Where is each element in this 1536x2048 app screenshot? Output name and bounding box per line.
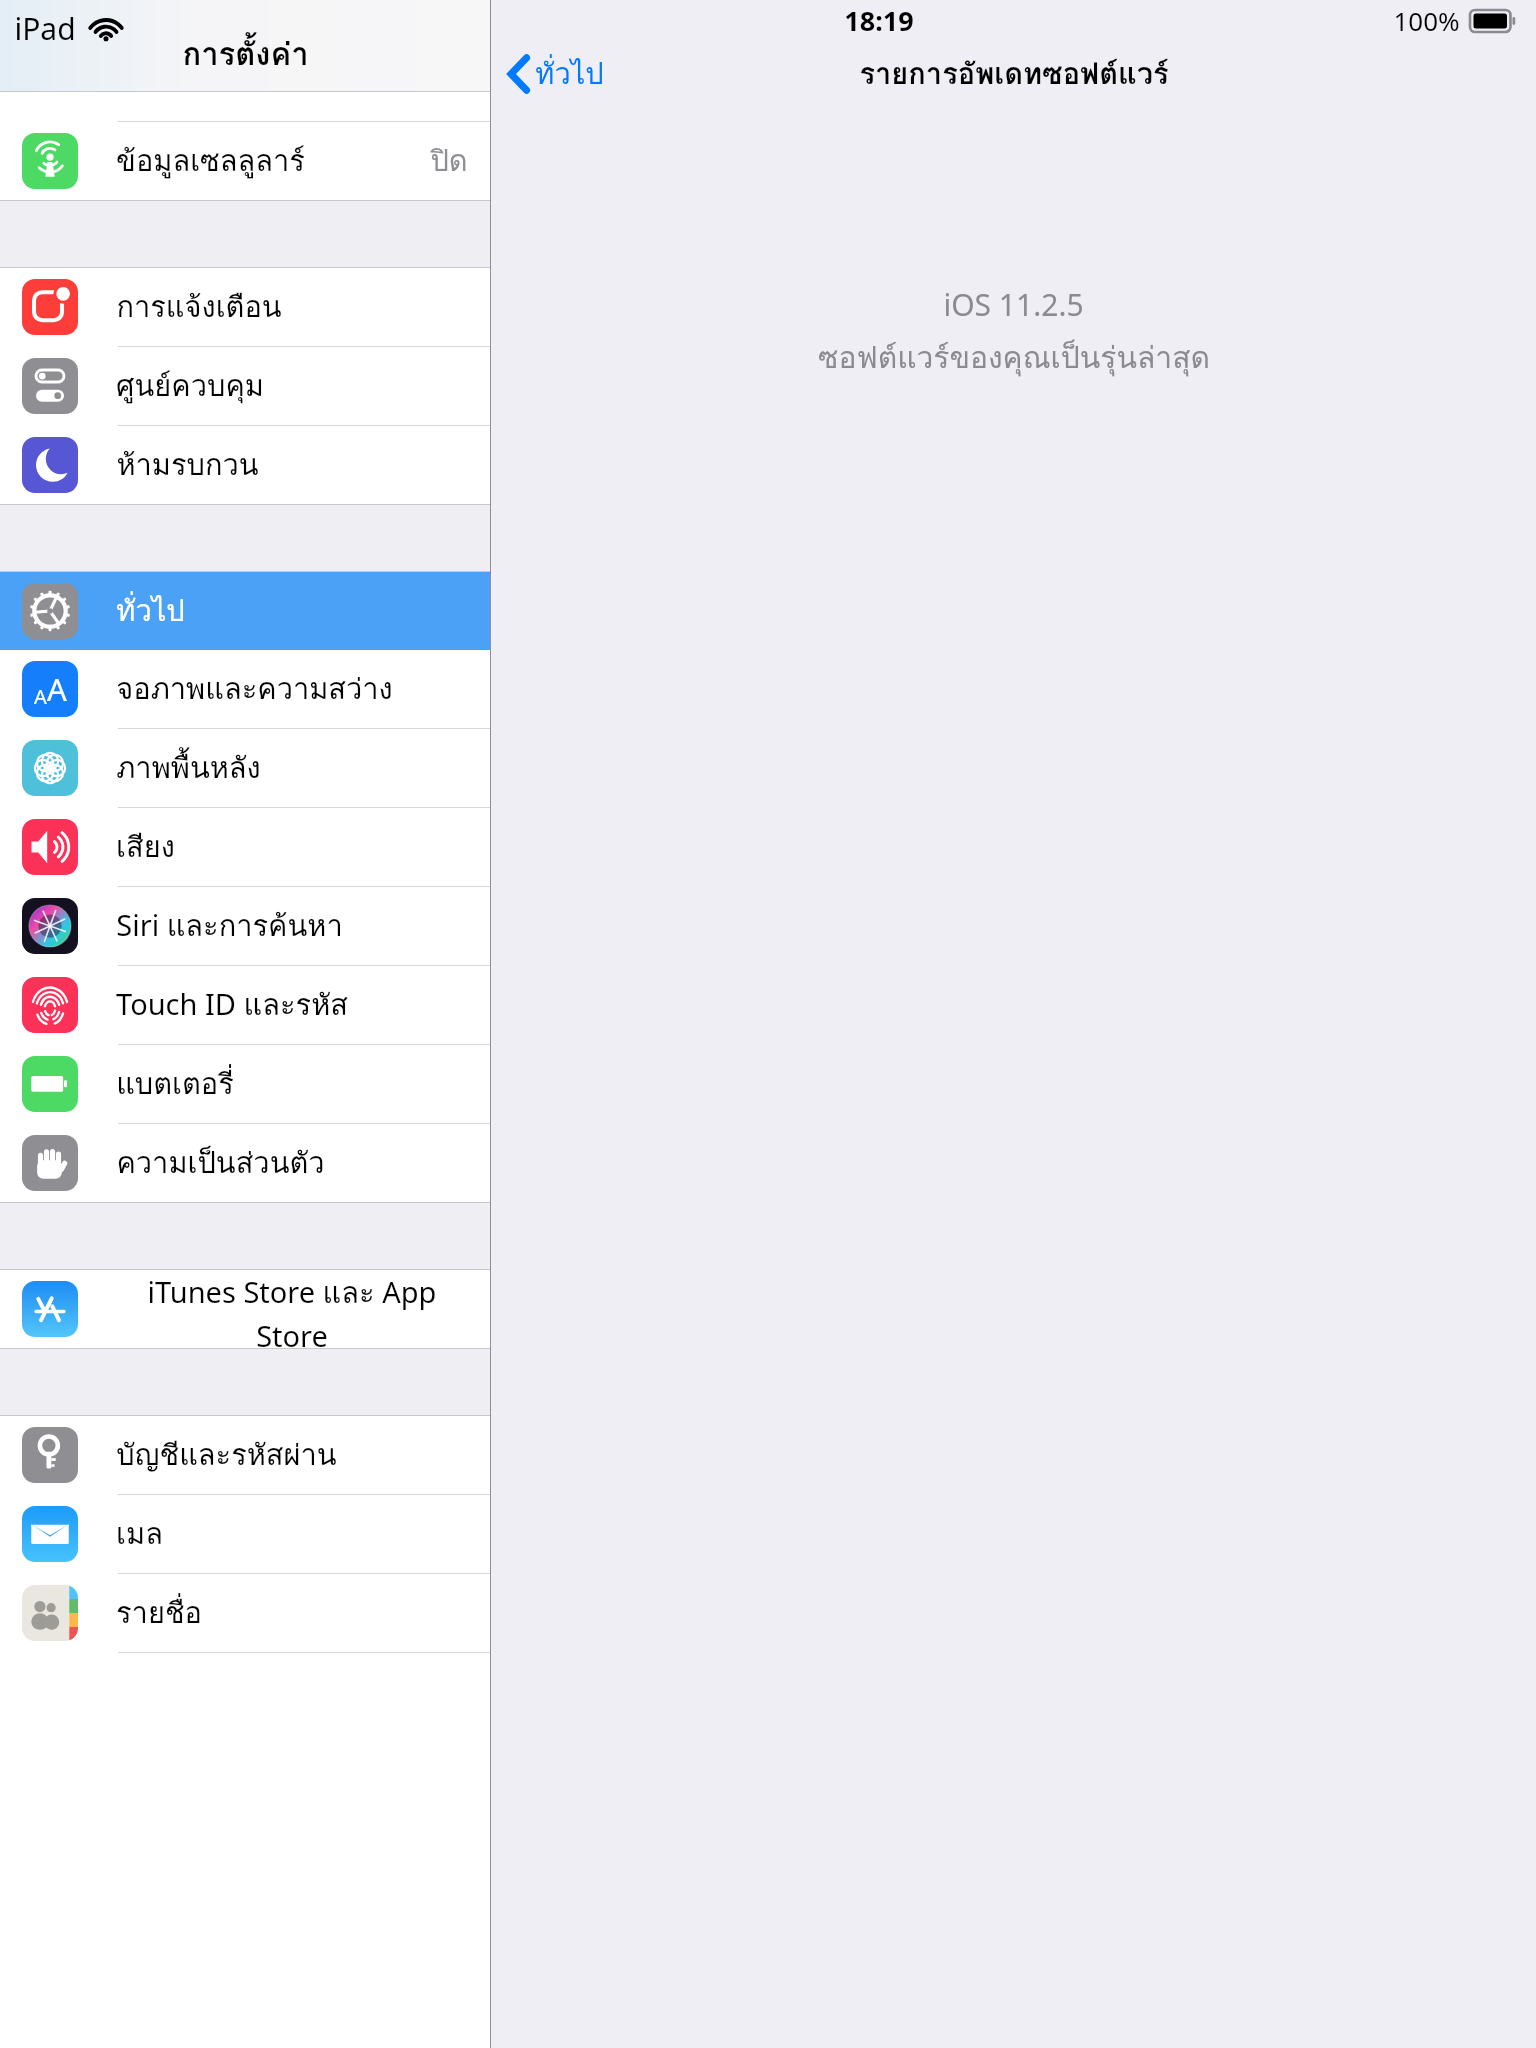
button[interactable]: Cellular Data xyxy=(0,122,490,200)
staticText: ห้ามรบกวน xyxy=(116,442,259,488)
button[interactable]: Notifications xyxy=(0,268,490,347)
staticText: แบตเตอรี่ xyxy=(116,1061,234,1107)
staticText: เมล xyxy=(116,1511,163,1557)
other: Do Not Disturb xyxy=(22,437,78,493)
staticText: ความเป็นส่วนตัว xyxy=(116,1140,325,1186)
button[interactable]: Wallpaper xyxy=(0,729,490,808)
staticText: iOS 11.2.5 xyxy=(943,284,1084,325)
staticText: รายการอัพเดทซอฟต์แวร์ xyxy=(859,51,1169,97)
staticText: จอภาพและความสว่าง xyxy=(116,666,393,712)
button[interactable]: Privacy xyxy=(0,1124,490,1202)
staticText: Touch ID และรหัส xyxy=(116,982,348,1028)
staticText: iTunes Store และ App Store xyxy=(116,1270,468,1348)
other: Battery xyxy=(22,1056,78,1112)
staticText: ซอฟต์แวร์ของคุณเป็นรุ่นล่าสุด xyxy=(818,334,1210,382)
staticText: การตั้งค่า xyxy=(182,29,309,78)
staticText: ปิด xyxy=(430,138,468,184)
staticText: A xyxy=(34,683,47,710)
staticText: iPad xyxy=(14,8,76,49)
staticText: ข้อมูลเซลลูลาร์ xyxy=(116,138,305,184)
staticText: การแจ้งเตือน xyxy=(116,284,282,330)
staticText: ทั่วไป xyxy=(535,51,604,97)
other: Control Center xyxy=(22,358,78,414)
button[interactable]: ทั่วไป xyxy=(505,45,608,103)
button[interactable]: Accounts & Passwords xyxy=(0,1416,490,1495)
staticText: รายชื่อ xyxy=(116,1590,202,1636)
staticText: 18:19 xyxy=(844,2,914,39)
staticText: ภาพพื้นหลัง xyxy=(116,745,261,791)
other: Contacts xyxy=(22,1585,78,1641)
button[interactable]: Mail xyxy=(0,1495,490,1574)
button[interactable]: General xyxy=(0,572,490,650)
other: Wallpaper xyxy=(22,740,78,796)
other: Display & Brightness xyxy=(22,661,78,717)
other: Siri & Search xyxy=(22,898,78,954)
button[interactable]: Display & Brightness xyxy=(0,650,490,729)
button[interactable]: Do Not Disturb xyxy=(0,426,490,504)
other: Cellular Data xyxy=(22,133,78,189)
other: Mail xyxy=(22,1506,78,1562)
button[interactable]: iTunes Store and App Store xyxy=(0,1270,490,1348)
staticText: บัญชีและรหัสผ่าน xyxy=(116,1432,337,1478)
button[interactable]: Battery xyxy=(0,1045,490,1124)
other: General xyxy=(22,583,78,639)
staticText: ศูนย์ควบคุม xyxy=(116,363,264,409)
staticText: 100% xyxy=(1393,3,1460,38)
staticText: Siri และการค้นหา xyxy=(116,903,343,949)
other: Touch ID & Passcode xyxy=(22,977,78,1033)
staticText: เสียง xyxy=(116,824,175,870)
other: Sounds xyxy=(22,819,78,875)
button[interactable]: Siri & Search xyxy=(0,887,490,966)
button[interactable]: Sounds xyxy=(0,808,490,887)
other: Privacy xyxy=(22,1135,78,1191)
other: Accounts & Passwords xyxy=(22,1427,78,1483)
other: Notifications xyxy=(22,279,78,335)
other: iTunes Store and App Store xyxy=(22,1281,78,1337)
button[interactable]: Control Center xyxy=(0,347,490,426)
staticText: ทั่วไป xyxy=(116,588,185,634)
button[interactable]: Touch ID & Passcode xyxy=(0,966,490,1045)
staticText: A xyxy=(47,668,67,710)
button[interactable]: Contacts xyxy=(0,1574,490,1653)
